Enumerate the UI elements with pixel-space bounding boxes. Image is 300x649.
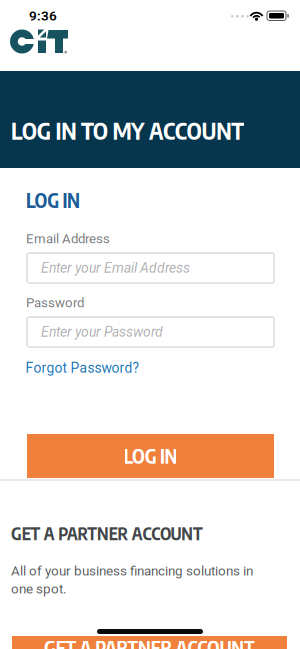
staticText: LOG IN TO MY ACCOUNT [11, 116, 244, 145]
staticText: Enter your Password [41, 324, 163, 340]
button[interactable]: Forgot Password? [25, 360, 139, 376]
staticText: LOG IN [26, 188, 80, 212]
staticText: one spot. [11, 581, 67, 597]
button[interactable]: GET A PARTNER ACCOUNT [12, 636, 287, 649]
staticText: All of your business financing solutions… [11, 563, 253, 579]
button[interactable]: LOG IN [27, 434, 274, 478]
staticText: GET A PARTNER ACCOUNT [44, 636, 255, 649]
staticText: Forgot Password? [25, 360, 139, 376]
staticText: 9:36 [29, 8, 57, 24]
button[interactable]: Enter your Email Address [27, 253, 274, 283]
staticText: Password [26, 295, 84, 310]
button[interactable]: Enter your Password [27, 317, 274, 347]
staticText: Enter your Email Address [41, 260, 190, 276]
staticText: LOG IN [123, 444, 177, 468]
staticText: GET A PARTNER ACCOUNT [11, 522, 203, 544]
staticText: Email Address [26, 231, 110, 246]
